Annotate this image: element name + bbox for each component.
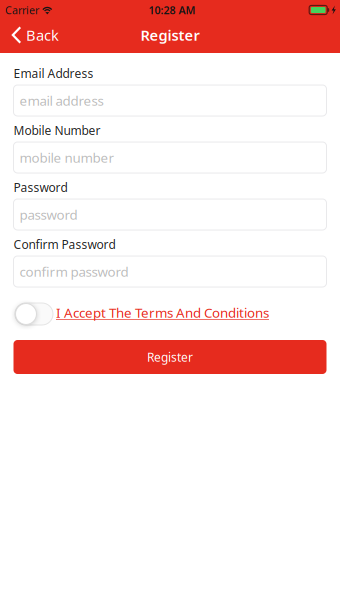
staticText: I Accept The Terms And Conditions: [56, 304, 269, 321]
staticText: 10:28 AM: [148, 3, 195, 17]
button[interactable]: Accept the terms and conditions: [13, 303, 53, 325]
staticText: Email Address: [13, 65, 93, 81]
button[interactable]: I Accept The Terms And Conditions: [56, 305, 269, 323]
staticText: Confirm Password: [13, 236, 115, 252]
staticText: email address: [19, 92, 103, 109]
staticText: Carrier: [5, 3, 39, 17]
staticText: Register: [140, 25, 199, 45]
staticText: Mobile Number: [13, 122, 100, 138]
staticText: mobile number: [19, 149, 114, 166]
button[interactable]: Register: [13, 340, 326, 374]
staticText: password: [19, 206, 77, 223]
staticText: Back: [26, 25, 59, 45]
staticText: Password: [13, 179, 67, 195]
button[interactable]: Back: [0, 20, 68, 53]
staticText: confirm password: [19, 263, 128, 280]
staticText: Register: [147, 349, 193, 365]
